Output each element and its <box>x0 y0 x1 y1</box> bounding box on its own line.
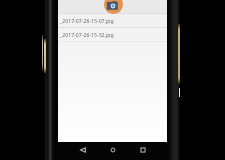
staticText: _2017-07-26-15-07.jpg <box>60 17 114 24</box>
button[interactable]: Camera <box>104 0 123 14</box>
button[interactable]: _2017-07-26-15-07.jpg <box>58 14 167 27</box>
button[interactable]: _2017-07-26-15-32.jpg <box>58 28 167 41</box>
button[interactable]: Home <box>107 144 119 156</box>
button[interactable]: Recent apps <box>137 144 149 156</box>
staticText: _2017-07-26-15-32.jpg <box>60 31 114 38</box>
button[interactable]: Back <box>77 144 89 156</box>
